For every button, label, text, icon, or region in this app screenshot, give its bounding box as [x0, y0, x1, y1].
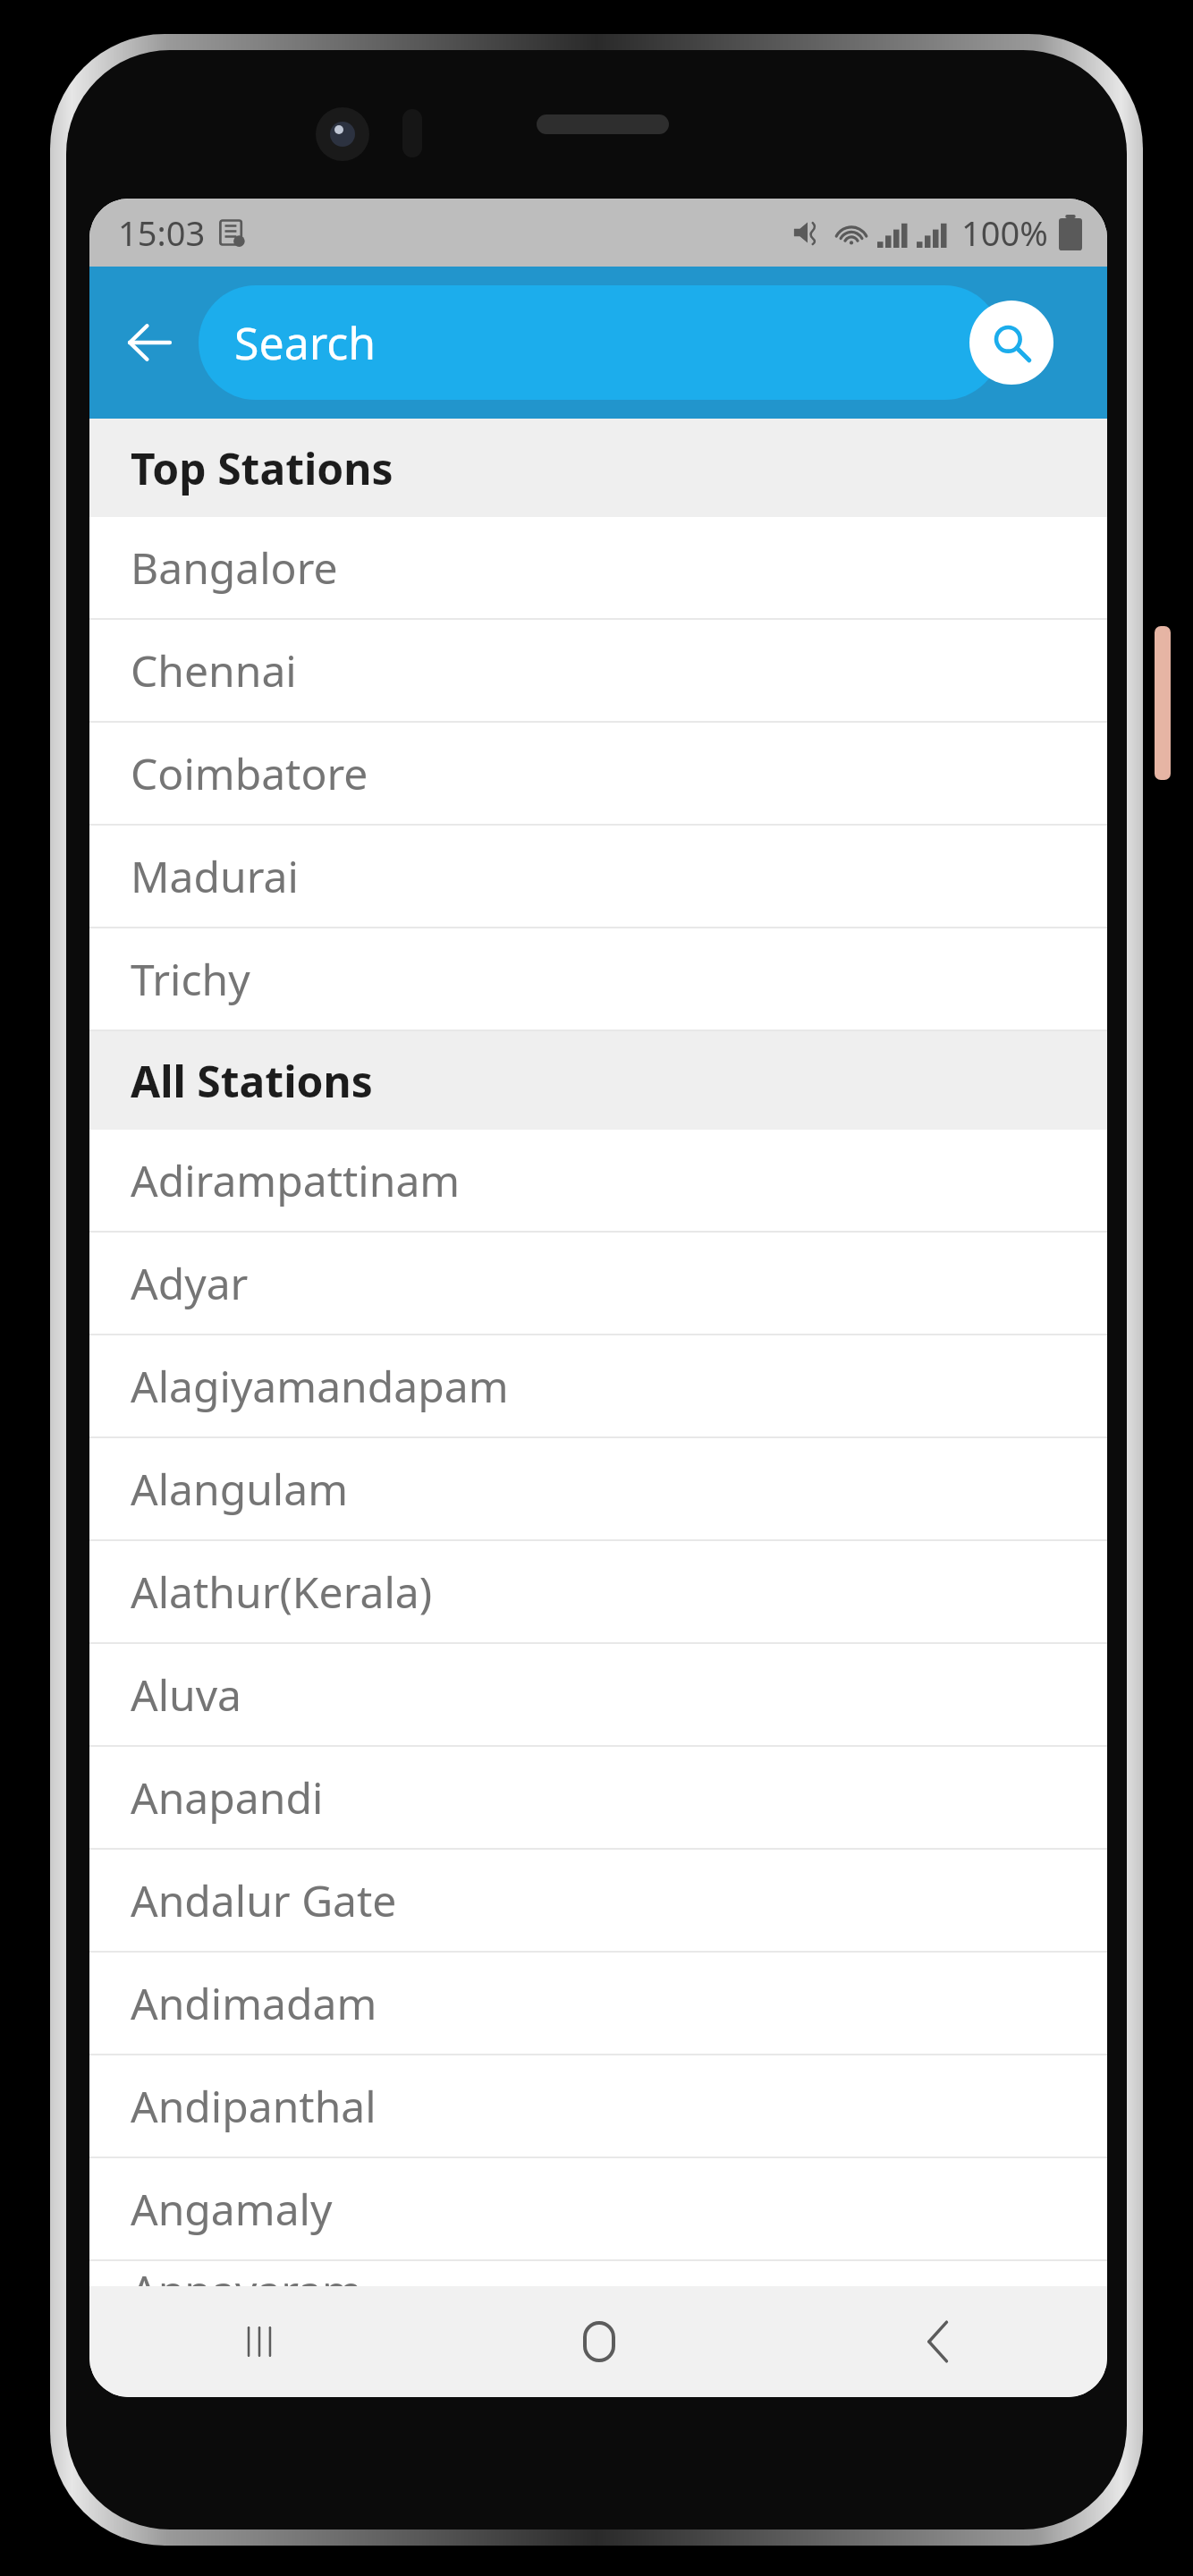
button[interactable]: Alangulam: [89, 1438, 1107, 1539]
staticText: Andalur Gate: [131, 1871, 397, 1929]
staticText: Alangulam: [131, 1460, 349, 1518]
button[interactable]: Bangalore: [89, 517, 1107, 618]
staticText: Angamaly: [131, 2180, 333, 2238]
button[interactable]: All Stations: [89, 1031, 1107, 1130]
staticText: Chennai: [131, 641, 297, 699]
button[interactable]: Search: [969, 301, 1053, 385]
staticText: All Stations: [131, 1052, 373, 1110]
button[interactable]: Andimadam: [89, 1953, 1107, 2054]
button[interactable]: Coimbatore: [89, 723, 1107, 824]
button[interactable]: Andipanthal: [89, 2055, 1107, 2157]
staticText: Anapandi: [131, 1768, 324, 1826]
button[interactable]: Chennai: [89, 620, 1107, 721]
button[interactable]: Top Stations: [89, 419, 1107, 517]
button[interactable]: Annavaram: [89, 2261, 1107, 2286]
button[interactable]: Alagiyamandapam: [89, 1335, 1107, 1436]
staticText: 15:03: [118, 209, 206, 256]
staticText: Bangalore: [131, 538, 338, 597]
staticText: Top Stations: [131, 439, 393, 497]
staticText: Andipanthal: [131, 2077, 377, 2135]
button[interactable]: Angamaly: [89, 2158, 1107, 2259]
staticText: Madurai: [131, 847, 299, 905]
staticText: Search: [234, 312, 377, 373]
button[interactable]: Anapandi: [89, 1747, 1107, 1848]
button[interactable]: Andalur Gate: [89, 1850, 1107, 1951]
button[interactable]: Madurai: [89, 826, 1107, 927]
staticText: Coimbatore: [131, 744, 368, 802]
staticText: 100%: [961, 209, 1048, 256]
staticText: Alathur(Kerala): [131, 1563, 433, 1621]
button[interactable]: Alathur(Kerala): [89, 1541, 1107, 1642]
button[interactable]: Search: [199, 285, 1002, 400]
button[interactable]: Aluva: [89, 1644, 1107, 1745]
button[interactable]: Adyar: [89, 1233, 1107, 1334]
staticText: Adirampattinam: [131, 1151, 461, 1209]
staticText: Adyar: [131, 1254, 249, 1312]
button[interactable]: Home: [429, 2286, 768, 2397]
button[interactable]: Back: [111, 304, 188, 381]
staticText: Trichy: [131, 950, 250, 1008]
button[interactable]: Back: [768, 2286, 1107, 2397]
staticText: Aluva: [131, 1665, 242, 1724]
staticText: Andimadam: [131, 1974, 377, 2032]
button[interactable]: Recents: [89, 2286, 429, 2397]
staticText: Alagiyamandapam: [131, 1357, 509, 1415]
button[interactable]: Adirampattinam: [89, 1130, 1107, 1231]
staticText: Annavaram: [131, 2261, 362, 2286]
button[interactable]: Trichy: [89, 928, 1107, 1030]
